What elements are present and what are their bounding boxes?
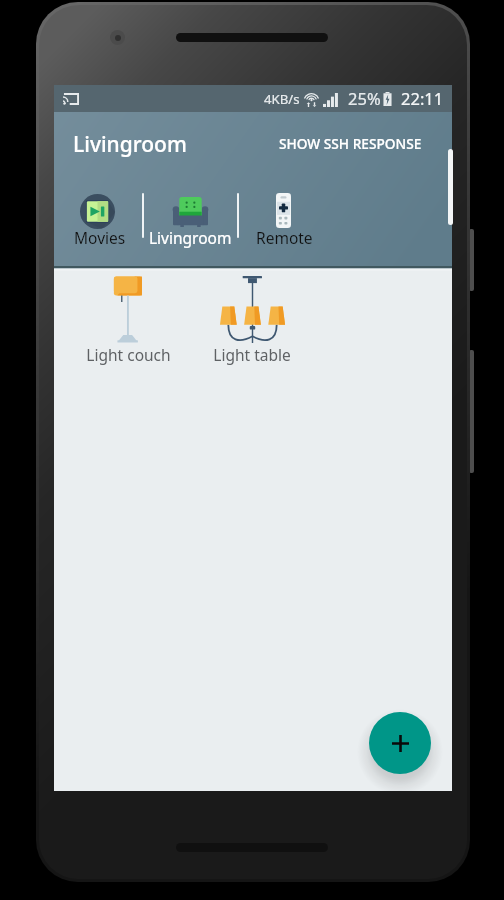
staticText: Remote (256, 227, 313, 248)
staticText: Movies (74, 227, 126, 248)
staticText: SHOW SSH RESPONSE (279, 134, 422, 153)
button[interactable] (276, 193, 291, 228)
staticText: Livingroom (149, 227, 232, 248)
staticText: Livingroom (73, 130, 187, 159)
button[interactable]: Light couch (66, 266, 190, 366)
button[interactable] (80, 194, 115, 229)
button[interactable]: SHOW SSH RESPONSE (272, 128, 429, 159)
staticText: 4KB/s (264, 90, 300, 108)
button[interactable]: Add (369, 712, 431, 774)
button[interactable]: Light table (190, 266, 314, 366)
staticText: 22:11 (401, 87, 444, 109)
staticText: Light table (213, 344, 291, 365)
staticText: 25% (348, 87, 381, 109)
button[interactable] (173, 197, 208, 227)
staticText: Light couch (86, 344, 171, 365)
